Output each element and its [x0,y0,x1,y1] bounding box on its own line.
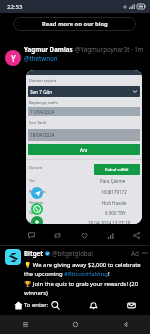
staticText: 18/04/2024 [30,132,55,138]
staticText: 6 000 TRY [105,210,126,216]
button[interactable]: Like [78,229,91,242]
staticText: Ad [131,249,139,257]
staticText: Son Tarih [29,120,47,125]
button[interactable]: Bitget profile photo [5,249,21,265]
button[interactable]: Yagmur Damlas profile photo [5,50,21,66]
button[interactable]: 11/04/2024 [28,107,140,116]
staticText: Yöntem [29,200,44,205]
button[interactable]: Search and explore [37,297,74,314]
button[interactable]: Son 7 Gün [28,86,140,97]
staticText: Yagmur Damlas [24,45,73,53]
staticText: Hızlı Havale [102,200,127,206]
staticText: 1608179172 [101,189,127,195]
button[interactable]: Repost [51,229,64,242]
staticText: Ara [80,147,88,153]
staticText: @bitgetglobal [52,249,93,257]
staticText: 11/04/2024 [30,109,55,115]
staticText: Bitget [24,249,43,257]
staticText: To enter: [24,301,49,309]
button[interactable]: Attached screenshot [26,70,142,224]
staticText: Dönem seçiniz [29,78,57,83]
button[interactable]: Notifications [74,297,112,314]
staticText: Başlangıç tarihi [29,100,58,105]
button[interactable]: View post analytics [104,229,117,242]
button[interactable]: Recent apps [0,315,50,334]
staticText: 22:53 [7,3,23,11]
button[interactable]: Share post [130,229,143,242]
staticText: Tutar [29,210,39,215]
button[interactable]: Home [50,315,100,334]
staticText: Read more on our blog [42,20,108,28]
staticText: Referans [29,189,46,194]
button[interactable]: Back [100,315,150,334]
staticText: Kabul edildi [105,167,129,173]
button[interactable]: Read more on our blog [13,17,136,31]
staticText: 🏆 Join the quiz to grab your rewards! (2… [24,280,144,296]
staticText: 💡 We are giving away $2,000 to celebrate… [24,261,144,277]
staticText: Tür [29,178,36,183]
button[interactable]: 18/04/2024 [28,129,140,141]
staticText: Son 7 Gün [30,89,53,95]
staticText: @Yagmurpoynar3t · 1m [75,45,144,53]
staticText: 18.04.2024 13:27:18 [88,220,131,224]
staticText: @thetwnon [24,54,58,62]
button[interactable]: Ara [28,144,140,155]
button[interactable]: Reply [25,229,38,242]
button[interactable]: Home [0,297,37,314]
staticText: Durum [29,165,43,170]
button[interactable]: Direct messages [112,297,150,314]
staticText: Para Çekme [100,178,126,184]
staticText: Tarih [29,220,39,224]
staticText: Y [11,53,16,64]
